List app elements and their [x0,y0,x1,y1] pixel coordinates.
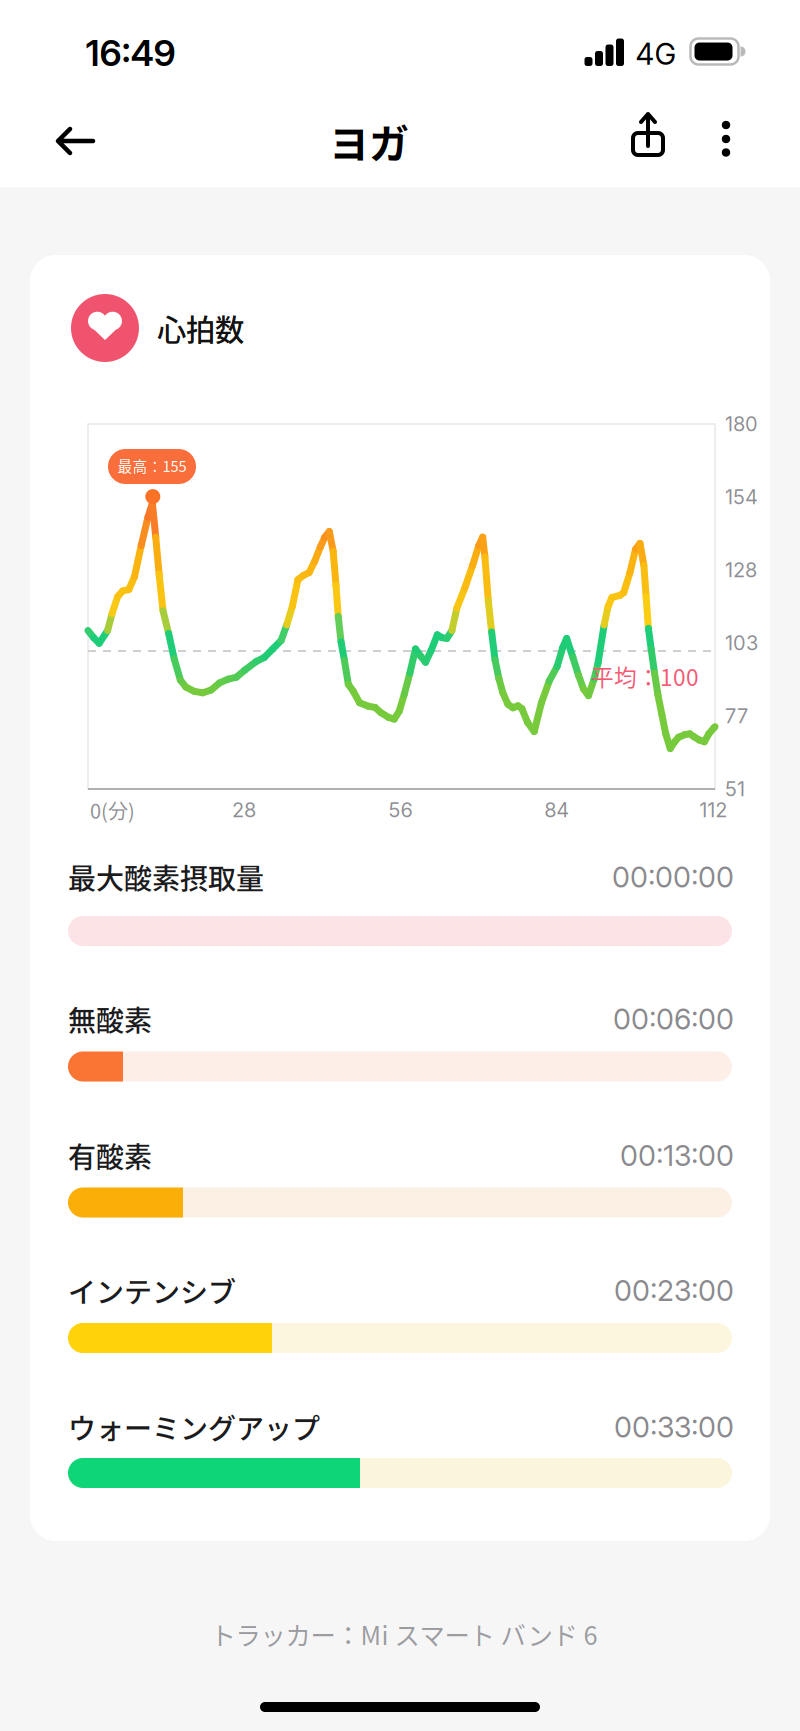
staticText: 有酸素 [68,1135,152,1176]
staticText: 103 [725,631,758,655]
staticText: 00:33:00 [614,1410,734,1444]
staticText: 最大酸素摂取量 [68,857,264,897]
staticText: 00:23:00 [614,1273,734,1308]
staticText: 56 [388,798,412,822]
staticText: 112 [699,798,727,822]
staticText: 00:06:00 [613,1002,734,1036]
staticText: トラッカー：Mi スマート バンド 6 [210,1616,597,1652]
staticText: インテンシブ [68,1270,236,1311]
staticText: 51 [725,777,745,801]
staticText: 0(分) [90,795,135,824]
staticText: 最高：155 [117,455,186,476]
staticText: 128 [725,558,757,582]
button[interactable]: Back [43,113,107,169]
staticText: 180 [725,412,758,436]
staticText: 154 [725,485,758,509]
button[interactable]: More [702,111,750,167]
staticText: 28 [232,798,256,822]
staticText: 77 [725,704,748,728]
staticText: ウォーミングアップ [68,1407,320,1447]
button[interactable]: Share [620,109,676,165]
staticText: 4G [635,36,676,72]
staticText: ヨガ [329,112,409,170]
staticText: 00:13:00 [620,1138,734,1173]
staticText: 16:49 [85,31,175,75]
staticText: 00:00:00 [612,860,734,894]
staticText: 84 [544,798,569,822]
staticText: 無酸素 [68,999,152,1039]
staticText: 平均：100 [591,660,699,692]
staticText: 心拍数 [157,307,244,349]
